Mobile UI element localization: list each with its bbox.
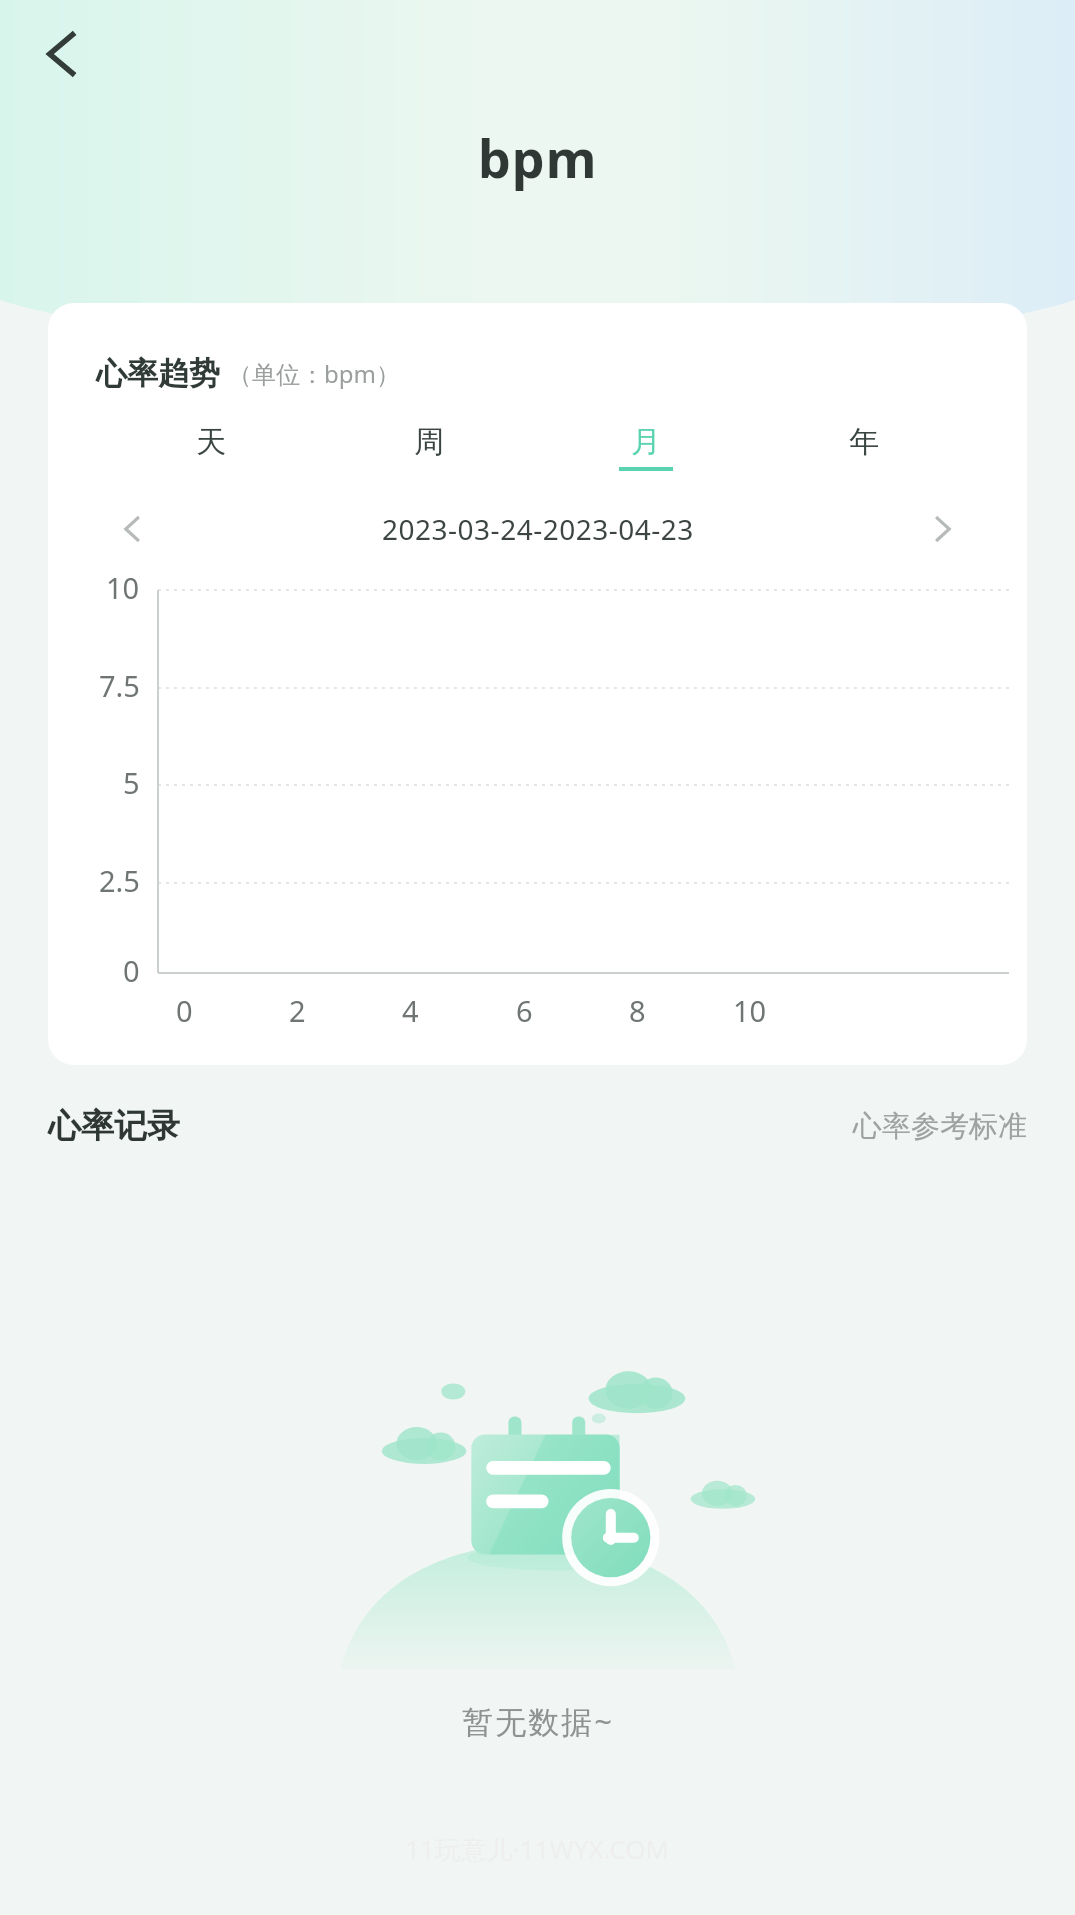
button[interactable]: 心率记录	[48, 1105, 180, 1147]
staticText: 10	[106, 568, 140, 607]
staticText: 心率记录	[48, 1105, 180, 1147]
staticText: 年	[849, 423, 879, 461]
button[interactable]: Next period	[905, 491, 981, 567]
staticText: 2	[289, 991, 306, 1030]
staticText: 心率趋势	[96, 354, 220, 393]
button[interactable]: 天	[156, 419, 266, 475]
staticText: 6	[516, 991, 533, 1030]
staticText: 5	[123, 763, 140, 802]
staticText: 天	[196, 423, 226, 461]
staticText: （单位：bpm）	[228, 357, 400, 390]
button[interactable]: Previous period	[94, 491, 170, 567]
button[interactable]: 年	[809, 419, 919, 475]
button[interactable]: 周	[374, 419, 484, 475]
staticText: 0	[176, 991, 193, 1030]
staticText: 暂无数据~	[462, 1700, 614, 1742]
button[interactable]: 月	[591, 419, 701, 475]
staticText: 8	[629, 991, 646, 1030]
staticText: 2023-03-24-2023-04-23	[382, 510, 694, 548]
staticText: 月	[631, 423, 661, 461]
staticText: 心率参考标准	[853, 1108, 1027, 1145]
staticText: 2.5	[99, 861, 140, 900]
staticText: 10	[733, 991, 767, 1030]
staticText: 0	[123, 951, 140, 990]
staticText: 7.5	[99, 666, 140, 705]
staticText: bpm	[478, 122, 598, 193]
button[interactable]: Back	[14, 6, 110, 102]
staticText: 周	[414, 423, 444, 461]
button[interactable]: 心率参考标准	[853, 1108, 1027, 1145]
staticText: 4	[402, 991, 419, 1030]
